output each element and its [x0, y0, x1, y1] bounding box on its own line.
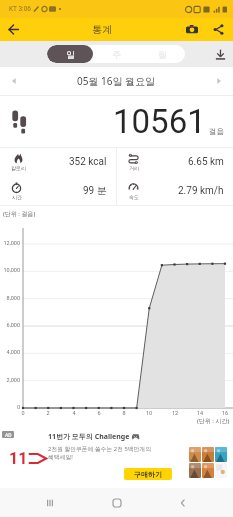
staticText: KT 3:06 [9, 5, 31, 13]
staticText: 거리 [129, 165, 139, 171]
staticText: 8 [119, 410, 129, 416]
staticText: 시간 [12, 194, 22, 200]
button[interactable]: Next day [205, 67, 233, 95]
staticText: 10561 [113, 102, 206, 141]
staticText: 통계 [92, 23, 112, 36]
staticText: 2.79 km/h [178, 185, 224, 197]
staticText: 11 [9, 449, 28, 468]
staticText: 2,000 [0, 377, 20, 383]
button[interactable]: Back [0, 18, 26, 41]
button[interactable]: 구매하기 [124, 468, 172, 480]
staticText: 8,000 [0, 295, 20, 301]
staticText: 걸음 [209, 127, 224, 136]
staticText: AD [5, 432, 12, 438]
staticText: 0 [18, 410, 28, 416]
staticText: 6.65 km [188, 156, 224, 168]
staticText: 4 [69, 410, 79, 416]
staticText: 12 [170, 410, 180, 416]
staticText: 10,000 [0, 267, 20, 273]
staticText: 0 [0, 404, 20, 410]
staticText: 월 [158, 49, 167, 60]
staticText: 2천원 할인쿠폰에 쓸수는 2천 5백만개의 혜택세일! [48, 445, 151, 461]
staticText: (단위 : 걸음) [3, 210, 36, 218]
staticText: 11번가 모두의 Challenge 🎮 [48, 432, 140, 442]
staticText: 일 [66, 49, 75, 60]
button[interactable]: Share [205, 18, 231, 41]
staticText: (단위 : 시간) [197, 417, 230, 425]
staticText: 352 kcal [69, 156, 107, 168]
staticText: 6,000 [0, 322, 20, 328]
staticText: 16 [220, 410, 230, 416]
staticText: 6 [94, 410, 104, 416]
staticText: 14 [195, 410, 205, 416]
button[interactable]: Recents [33, 488, 67, 517]
staticText: 칼로리 [11, 165, 26, 171]
staticText: 05월 16일 월요일 [77, 74, 156, 88]
button[interactable]: Home [100, 488, 134, 517]
button[interactable]: 일 [47, 45, 93, 63]
staticText: 4,000 [0, 349, 20, 355]
staticText: 2 [43, 410, 53, 416]
staticText: 속도 [129, 194, 139, 200]
button[interactable]: Previous day [0, 67, 28, 95]
button[interactable]: AD [0, 425, 233, 488]
staticText: 구매하기 [134, 470, 162, 479]
staticText: 12,000 [0, 240, 20, 246]
button[interactable]: 월 [139, 45, 185, 63]
button[interactable]: Back [166, 488, 200, 517]
button[interactable]: Download [207, 41, 233, 67]
staticText: 10 [144, 410, 154, 416]
button[interactable]: Camera [179, 18, 205, 41]
staticText: 99 분 [83, 184, 107, 197]
staticText: 주 [112, 49, 121, 60]
